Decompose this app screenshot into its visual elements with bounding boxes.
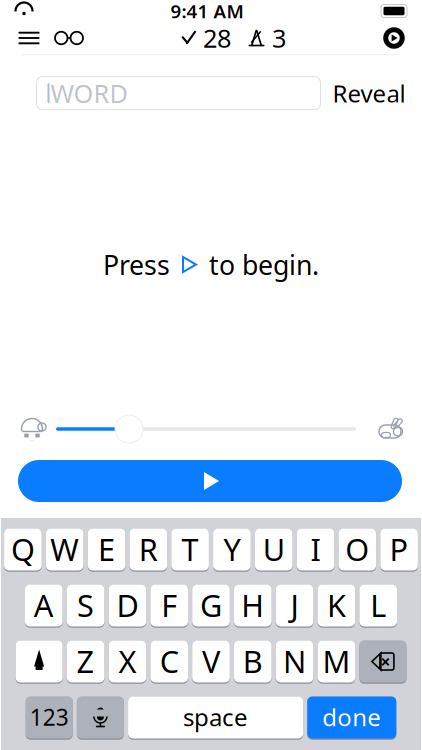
staticText: S [77, 585, 94, 625]
button[interactable]: Play [0, 460, 422, 502]
button[interactable]: N [276, 639, 313, 684]
button[interactable]: K [318, 583, 355, 628]
button[interactable]: L [359, 583, 397, 628]
staticText: Q [11, 529, 35, 569]
staticText: P [390, 529, 409, 569]
button[interactable]: Q [4, 527, 42, 572]
button[interactable]: Shift [16, 639, 63, 684]
button[interactable]: Reveal [320, 69, 417, 117]
button[interactable]: D [109, 583, 146, 628]
staticText: N [283, 641, 306, 681]
button[interactable]: U [255, 527, 292, 572]
button[interactable]: Z [67, 639, 104, 684]
staticText: F [161, 585, 177, 625]
staticText: R [139, 529, 158, 569]
staticText: to begin. [209, 247, 319, 282]
staticText: done [322, 701, 381, 733]
button[interactable]: Delete [359, 639, 406, 684]
staticText: × [380, 650, 390, 673]
button[interactable]: W [46, 527, 83, 572]
staticText: U [263, 529, 285, 569]
staticText: W [50, 529, 79, 569]
button[interactable]: V [192, 639, 230, 684]
button[interactable]: Tempo 3 [237, 15, 292, 61]
staticText: A [34, 585, 54, 625]
button[interactable]: O [338, 527, 376, 572]
staticText: J [291, 585, 299, 625]
staticText: X [118, 641, 136, 681]
button[interactable]: Settings [372, 18, 422, 58]
button[interactable]: M [318, 639, 355, 684]
staticText: G [200, 585, 222, 625]
staticText: Reveal [332, 77, 405, 109]
staticText: M [322, 641, 350, 681]
staticText: E [98, 529, 115, 569]
button[interactable]: Dictate [77, 695, 124, 740]
button[interactable]: Y [213, 527, 251, 572]
button[interactable]: C [150, 639, 188, 684]
button[interactable]: Reader [48, 20, 94, 56]
staticText: D [116, 585, 138, 625]
button[interactable]: S [67, 583, 104, 628]
staticText: space [183, 701, 248, 733]
staticText: 28 [203, 21, 231, 55]
staticText: C [160, 641, 179, 681]
staticText: L [370, 585, 386, 625]
staticText: 9:41 AM [170, 0, 243, 23]
staticText: 3 [272, 21, 286, 55]
button[interactable]: R [129, 527, 167, 572]
staticText: 123 [30, 702, 69, 732]
button[interactable]: space [128, 695, 303, 740]
button[interactable]: done [307, 695, 396, 740]
staticText: K [327, 585, 346, 625]
button[interactable]: G [192, 583, 230, 628]
staticText: Press [103, 247, 170, 282]
button[interactable]: X [109, 639, 146, 684]
staticText: WORD [50, 76, 127, 110]
staticText: H [241, 585, 264, 625]
staticText: O [345, 529, 369, 569]
staticText: I [310, 529, 320, 569]
button[interactable]: I [297, 527, 334, 572]
button[interactable]: A [25, 583, 63, 628]
button[interactable]: J [276, 583, 313, 628]
button[interactable]: Correct count 28 [174, 15, 237, 61]
button[interactable]: E [88, 527, 125, 572]
button[interactable]: Menu [0, 19, 48, 57]
button[interactable]: H [234, 583, 272, 628]
staticText: V [202, 641, 220, 681]
button[interactable]: P [380, 527, 418, 572]
staticText: Z [77, 641, 95, 681]
button[interactable]: 123 [26, 695, 73, 740]
staticText: B [243, 641, 263, 681]
staticText: Y [223, 529, 240, 569]
button[interactable]: B [234, 639, 272, 684]
staticText: T [182, 529, 199, 569]
button[interactable]: F [150, 583, 188, 628]
button[interactable]: T [171, 527, 209, 572]
